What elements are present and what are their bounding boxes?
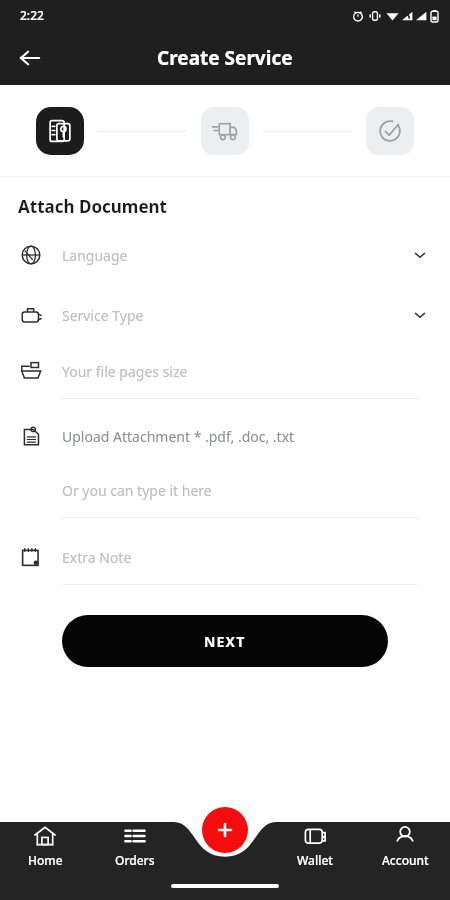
button[interactable]: Orders: [90, 820, 180, 872]
button[interactable]: NEXT: [62, 615, 388, 667]
staticText: NEXT: [204, 632, 246, 651]
staticText: Service Type: [62, 306, 412, 325]
staticText: Account: [382, 852, 429, 868]
button[interactable]: Account: [360, 820, 450, 872]
staticText: Language: [62, 246, 412, 265]
staticText: Orders: [115, 852, 155, 868]
staticText: Upload Attachment * .pdf, .doc, .txt: [62, 427, 428, 446]
staticText: Attach Document: [18, 195, 167, 218]
button[interactable]: Home: [0, 820, 90, 872]
button[interactable]: Step: [366, 107, 414, 155]
button[interactable]: Service Type: [0, 298, 450, 332]
button[interactable]: Language: [0, 238, 450, 272]
staticText: 2:22: [20, 7, 44, 23]
staticText: Or you can type it here: [62, 481, 428, 500]
button[interactable]: Step 1: [36, 107, 84, 155]
button[interactable]: Back: [8, 36, 52, 80]
button[interactable]: Step: [201, 107, 249, 155]
staticText: Extra Note: [62, 548, 428, 567]
staticText: Home: [28, 852, 63, 868]
button[interactable]: Wallet: [270, 820, 360, 872]
button[interactable]: Add: [202, 807, 248, 853]
staticText: Wallet: [297, 852, 333, 868]
staticText: Your file pages size: [62, 362, 428, 381]
staticText: Create Service: [157, 45, 293, 71]
